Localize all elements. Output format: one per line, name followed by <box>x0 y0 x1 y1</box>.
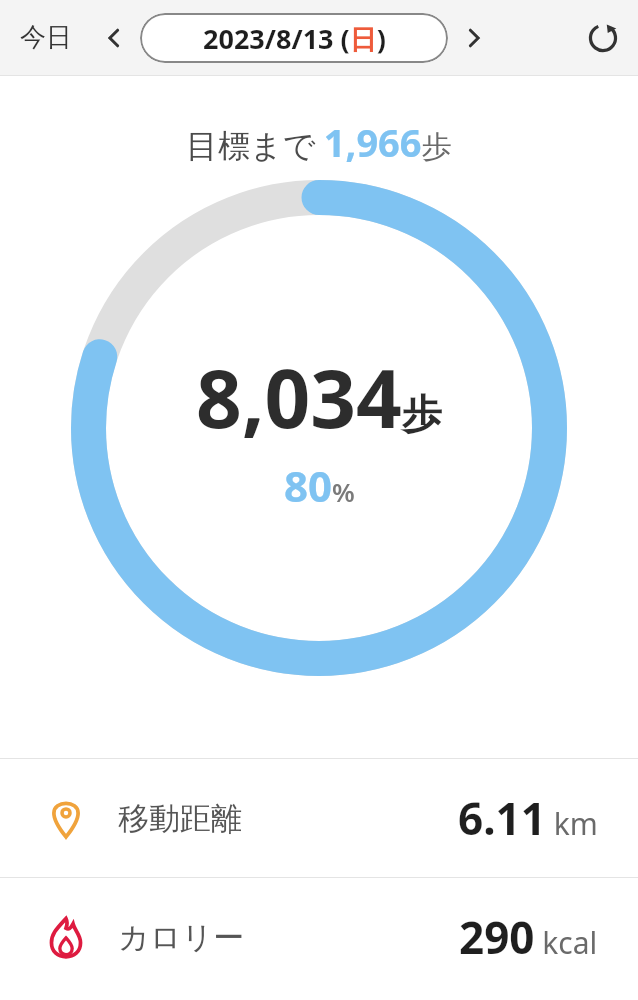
button[interactable]: Distance <box>0 759 638 877</box>
button[interactable]: Next day <box>454 18 494 58</box>
button[interactable]: Calories <box>0 878 638 996</box>
button[interactable]: Previous day <box>94 18 134 58</box>
staticText: 8,034歩 <box>196 342 442 451</box>
button[interactable]: 今日 <box>14 15 78 60</box>
staticText: 移動距離 <box>118 799 242 838</box>
staticText: 今日 <box>20 21 72 54</box>
button[interactable]: Refresh <box>578 13 628 63</box>
other: Distance <box>44 796 88 840</box>
staticText: 290 kcal <box>459 907 598 967</box>
staticText: カロリー <box>118 918 245 957</box>
staticText: 6.11 km <box>458 788 598 848</box>
other: Calories <box>44 915 88 959</box>
staticText: 目標まで 1,966歩 <box>186 116 452 168</box>
staticText: 2023/8/13 (日) <box>203 20 386 57</box>
staticText: 80% <box>284 457 355 514</box>
button[interactable]: 2023/8/13 (日) <box>140 13 448 63</box>
